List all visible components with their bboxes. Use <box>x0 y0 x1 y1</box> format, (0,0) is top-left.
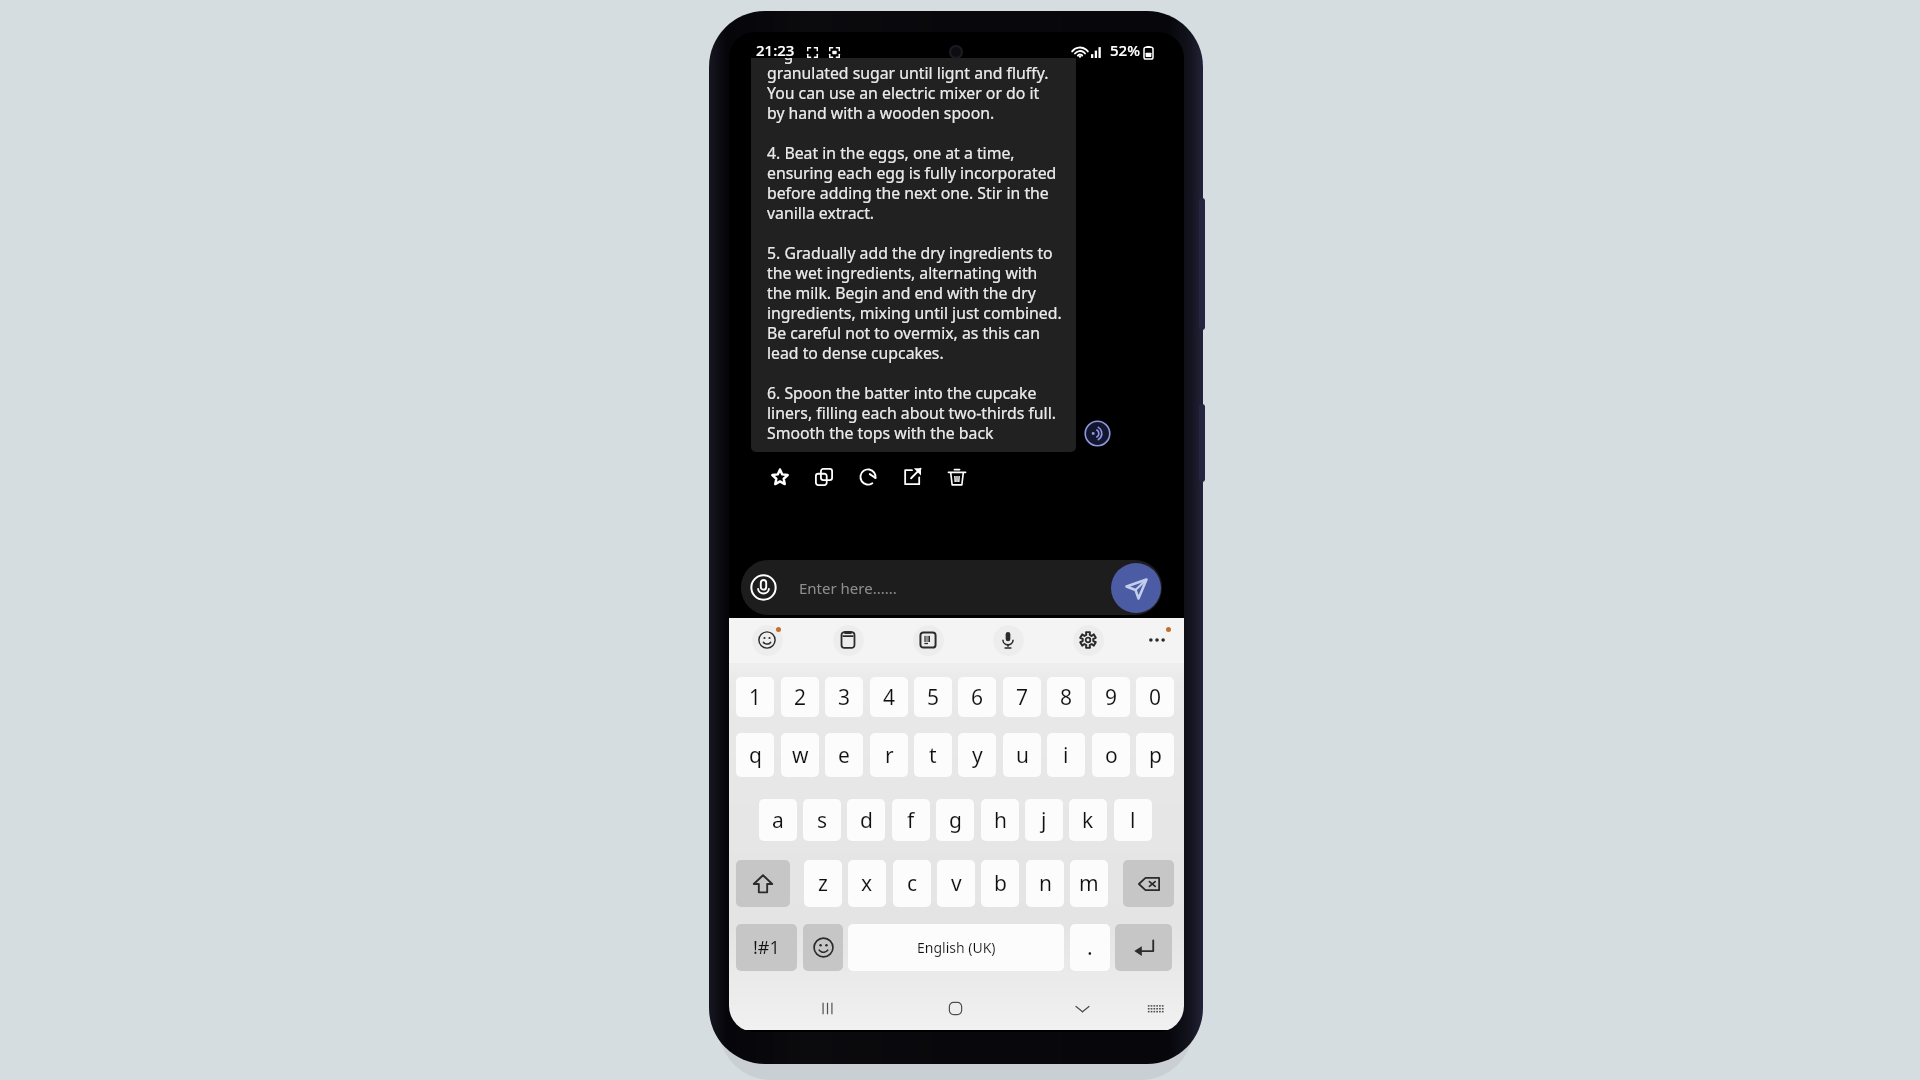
staticText: w <box>792 741 809 770</box>
staticText: e <box>838 741 850 770</box>
button[interactable]: Backspace <box>1123 860 1174 907</box>
staticText: m <box>1079 869 1099 898</box>
staticText: 52% <box>1110 40 1140 60</box>
button[interactable]: g <box>936 799 974 841</box>
button[interactable]: Home <box>940 993 970 1023</box>
button[interactable]: Clipboard <box>832 624 864 656</box>
staticText: p <box>1149 741 1162 770</box>
button[interactable]: Regenerate <box>855 464 881 490</box>
button[interactable]: Hide keyboard <box>1067 993 1097 1023</box>
button[interactable]: j <box>1025 799 1063 841</box>
staticText: n <box>1039 869 1052 898</box>
staticText: g <box>949 806 962 835</box>
button[interactable]: 4 <box>870 677 908 717</box>
button[interactable]: e <box>825 733 863 777</box>
button[interactable]: h <box>981 799 1019 841</box>
staticText: 9 <box>1105 683 1118 712</box>
button[interactable]: c <box>893 860 931 907</box>
staticText: d <box>860 806 873 835</box>
button[interactable]: Share <box>899 464 925 490</box>
staticText: h <box>994 806 1007 835</box>
staticText: k <box>1082 806 1094 835</box>
staticText: 0 <box>1149 683 1162 712</box>
button[interactable]: Emoji <box>751 624 783 656</box>
staticText: s <box>817 806 828 835</box>
button[interactable]: 7 <box>1003 677 1041 717</box>
staticText: u <box>1016 741 1029 770</box>
button[interactable]: p <box>1136 733 1174 777</box>
button[interactable]: Emoji keyboard <box>803 924 843 971</box>
staticText: 4 <box>883 683 896 712</box>
button[interactable]: q <box>736 733 774 777</box>
staticText: 8 <box>1060 683 1073 712</box>
button[interactable]: o <box>1092 733 1130 777</box>
staticText: g <box>767 58 794 65</box>
button[interactable]: . <box>1070 924 1110 971</box>
staticText: r <box>885 741 894 770</box>
button[interactable]: f <box>892 799 930 841</box>
button[interactable]: w <box>781 733 819 777</box>
button[interactable]: 8 <box>1047 677 1085 717</box>
button[interactable]: z <box>804 860 842 907</box>
button[interactable]: t <box>914 733 952 777</box>
staticText: o <box>1105 741 1118 770</box>
staticText: a <box>772 806 784 835</box>
button[interactable]: l <box>1114 799 1152 841</box>
staticText: v <box>951 869 962 898</box>
staticText: 3 <box>838 683 851 712</box>
staticText: x <box>861 869 873 898</box>
button[interactable]: Favourite <box>767 464 793 490</box>
button[interactable]: Text modes <box>912 624 944 656</box>
button[interactable]: Switch keyboard <box>1140 993 1170 1023</box>
button[interactable]: Recents <box>812 993 842 1023</box>
staticText: j <box>1041 806 1047 835</box>
staticText: z <box>818 869 828 898</box>
button[interactable]: Voice typing <box>992 624 1024 656</box>
staticText: granulated sugar until lignt and fluffy.… <box>767 58 1076 452</box>
button[interactable]: 5 <box>914 677 952 717</box>
button[interactable]: v <box>937 860 975 907</box>
staticText: 6 <box>971 683 984 712</box>
button[interactable]: s <box>803 799 841 841</box>
button[interactable]: granulated sugar until lignt and fluffy.… <box>751 58 1076 452</box>
button[interactable]: m <box>1070 860 1108 907</box>
button[interactable]: 0 <box>1136 677 1174 717</box>
button[interactable]: Shift <box>736 860 790 907</box>
button[interactable]: 6 <box>958 677 996 717</box>
button[interactable]: d <box>847 799 885 841</box>
staticText: !#1 <box>753 935 780 960</box>
button[interactable]: a <box>759 799 797 841</box>
staticText: l <box>1130 806 1136 835</box>
button[interactable]: Send <box>1111 563 1161 613</box>
button[interactable]: 9 <box>1092 677 1130 717</box>
button[interactable]: More options <box>1141 624 1173 656</box>
staticText: English (UK) <box>917 938 996 957</box>
button[interactable]: k <box>1069 799 1107 841</box>
staticText: c <box>907 869 918 898</box>
button[interactable]: 2 <box>781 677 819 717</box>
staticText: y <box>972 741 983 770</box>
staticText: 5 <box>927 683 940 712</box>
button[interactable]: y <box>958 733 996 777</box>
button[interactable]: n <box>1026 860 1064 907</box>
staticText: Enter here...... <box>799 578 897 598</box>
button[interactable]: !#1 <box>736 924 797 971</box>
button[interactable]: Voice input <box>749 573 778 602</box>
staticText: i <box>1063 741 1069 770</box>
button[interactable]: r <box>870 733 908 777</box>
button[interactable]: Settings <box>1072 624 1104 656</box>
button[interactable]: Read aloud <box>1083 419 1111 447</box>
button[interactable]: x <box>848 860 886 907</box>
button[interactable]: 1 <box>736 677 774 717</box>
button[interactable]: b <box>981 860 1019 907</box>
staticText: f <box>907 806 915 835</box>
staticText: 2 <box>794 683 807 712</box>
button[interactable]: English (UK) <box>848 924 1064 971</box>
staticText: b <box>994 869 1007 898</box>
button[interactable]: Enter <box>1115 924 1172 971</box>
button[interactable]: i <box>1047 733 1085 777</box>
button[interactable]: Copy <box>811 464 837 490</box>
button[interactable]: u <box>1003 733 1041 777</box>
button[interactable]: Delete <box>944 464 970 490</box>
button[interactable]: 3 <box>825 677 863 717</box>
